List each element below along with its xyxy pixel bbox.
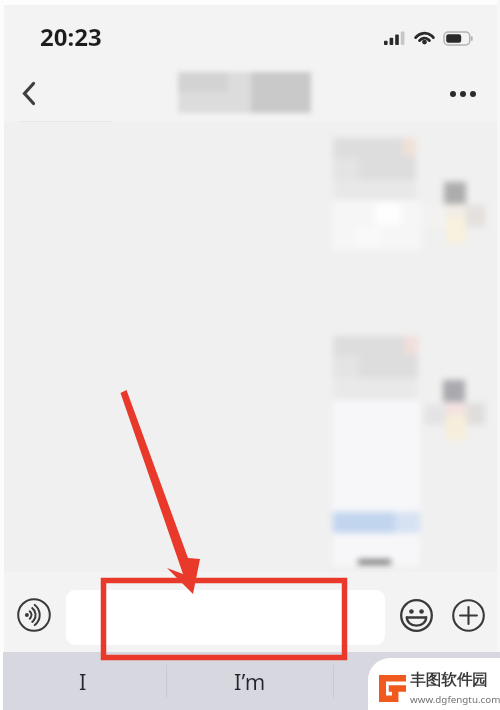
button[interactable] — [334, 652, 500, 710]
staticText: 20:23 — [40, 20, 102, 53]
staticText: I — [79, 666, 87, 696]
staticText: www.dgfengtu.com — [410, 693, 500, 706]
button[interactable]: I — [0, 652, 166, 710]
button[interactable]: More options — [440, 71, 486, 117]
button[interactable] — [66, 590, 385, 645]
staticText: 丰图软件园 — [410, 670, 488, 690]
button[interactable]: Back — [7, 71, 51, 115]
button[interactable]: I’m — [167, 652, 333, 710]
button[interactable]: More actions — [446, 593, 490, 637]
button[interactable]: Emoji — [394, 593, 438, 637]
staticText: I’m — [234, 666, 266, 696]
button[interactable]: Voice input — [12, 593, 56, 637]
